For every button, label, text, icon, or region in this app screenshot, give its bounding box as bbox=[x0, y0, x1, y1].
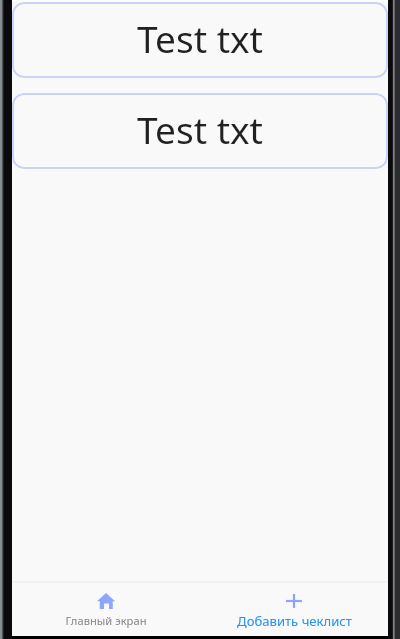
button[interactable]: Добавить чеклист bbox=[200, 583, 388, 636]
button[interactable]: Главный экран bbox=[12, 583, 200, 636]
staticText: Test txt bbox=[137, 104, 263, 154]
staticText: Test txt bbox=[137, 13, 263, 63]
other: Главный экран bbox=[97, 593, 115, 609]
staticText: Добавить чеклист bbox=[237, 612, 352, 630]
staticText: Главный экран bbox=[65, 613, 147, 628]
button[interactable]: Test txt bbox=[12, 93, 388, 169]
other: Добавить чеклист bbox=[286, 594, 302, 608]
button[interactable]: Test txt bbox=[12, 2, 388, 78]
